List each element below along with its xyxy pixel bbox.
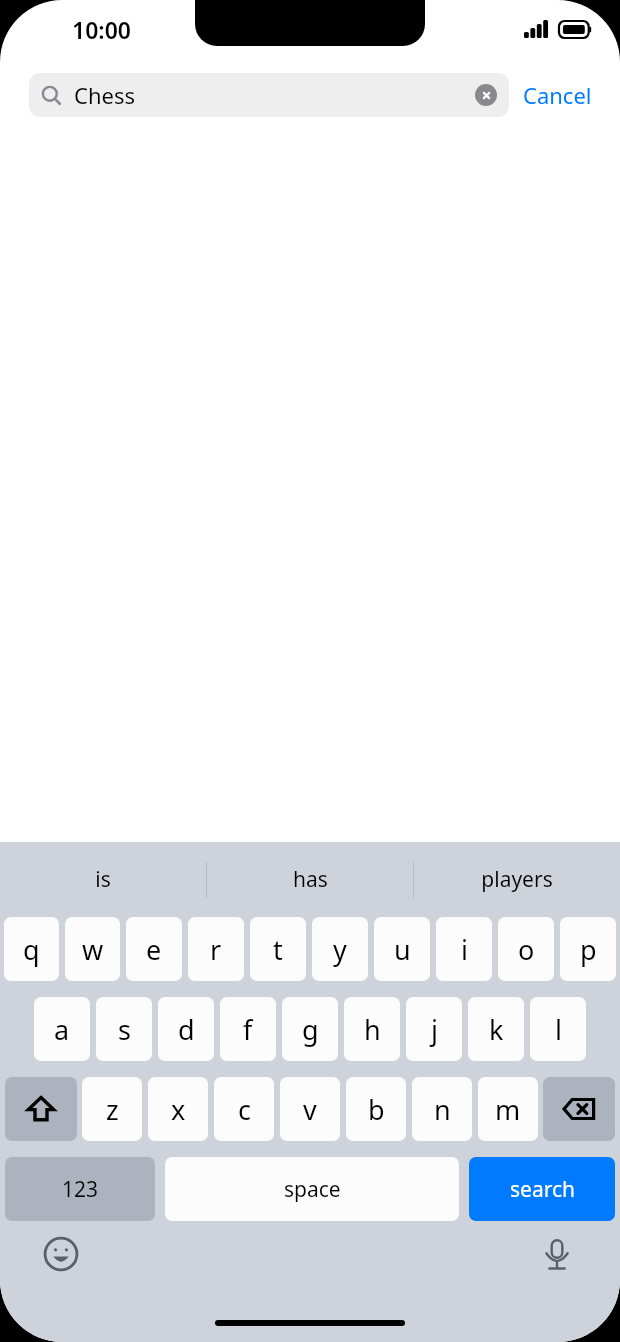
button[interactable]: e	[126, 917, 182, 981]
staticText: p	[580, 931, 597, 968]
staticText: c	[238, 1091, 251, 1128]
staticText: d	[178, 1011, 195, 1048]
button[interactable]: Emoji	[42, 1235, 80, 1273]
staticText: e	[146, 931, 162, 968]
staticText: q	[23, 931, 40, 968]
button[interactable]: q	[4, 917, 59, 981]
staticText: v	[303, 1091, 317, 1128]
button[interactable]: f	[220, 997, 276, 1061]
button[interactable]: Shift	[5, 1077, 77, 1141]
button[interactable]: r	[188, 917, 244, 981]
button[interactable]: t	[250, 917, 306, 981]
button[interactable]: s	[96, 997, 152, 1061]
staticText: z	[106, 1091, 119, 1128]
button[interactable]: j	[406, 997, 462, 1061]
button[interactable]: search	[469, 1157, 615, 1221]
staticText: m	[495, 1091, 521, 1128]
button[interactable]: Dictation	[538, 1235, 576, 1273]
button[interactable]: b	[346, 1077, 406, 1141]
staticText: l	[555, 1011, 562, 1048]
button[interactable]: c	[214, 1077, 274, 1141]
button[interactable]: players	[414, 842, 620, 917]
staticText: w	[82, 931, 104, 968]
button[interactable]: i	[436, 917, 492, 981]
staticText: f	[243, 1011, 253, 1048]
staticText: b	[368, 1091, 385, 1128]
staticText: i	[461, 931, 468, 968]
button[interactable]: p	[560, 917, 616, 981]
button[interactable]: g	[282, 997, 338, 1061]
staticText: n	[434, 1091, 451, 1128]
staticText: g	[302, 1011, 319, 1048]
button[interactable]: u	[374, 917, 430, 981]
button[interactable]: n	[412, 1077, 472, 1141]
staticText: j	[431, 1011, 438, 1048]
staticText: Chess	[74, 80, 475, 110]
staticText: k	[489, 1011, 504, 1048]
button[interactable]: m	[478, 1077, 538, 1141]
staticText: h	[364, 1011, 381, 1048]
staticText: s	[118, 1011, 131, 1048]
button[interactable]: l	[530, 997, 586, 1061]
staticText: u	[394, 931, 411, 968]
button[interactable]: Cancel	[509, 74, 592, 116]
button[interactable]: w	[65, 917, 120, 981]
button[interactable]: has	[207, 842, 413, 917]
button[interactable]: Chess	[29, 73, 509, 117]
staticText: o	[518, 931, 535, 968]
button[interactable]: Clear text	[475, 84, 497, 106]
button[interactable]: d	[158, 997, 214, 1061]
button[interactable]: Delete	[543, 1077, 615, 1141]
button[interactable]: v	[280, 1077, 340, 1141]
button[interactable]: 123	[5, 1157, 155, 1221]
staticText: is	[95, 865, 111, 894]
button[interactable]: a	[34, 997, 90, 1061]
staticText: t	[273, 931, 283, 968]
staticText: players	[481, 865, 553, 894]
staticText: r	[210, 931, 222, 968]
staticText: y	[333, 931, 347, 968]
button[interactable]: h	[344, 997, 400, 1061]
staticText: Cancel	[523, 80, 592, 110]
button[interactable]: is	[0, 842, 206, 917]
button[interactable]: z	[82, 1077, 142, 1141]
staticText: 10:00	[72, 14, 131, 45]
staticText: x	[171, 1091, 186, 1128]
staticText: has	[293, 865, 328, 894]
staticText: space	[284, 1175, 341, 1204]
button[interactable]: space	[165, 1157, 459, 1221]
button[interactable]: o	[498, 917, 554, 981]
staticText: search	[510, 1175, 575, 1204]
staticText: 123	[62, 1175, 99, 1204]
button[interactable]: k	[468, 997, 524, 1061]
staticText: a	[54, 1011, 70, 1048]
button[interactable]: y	[312, 917, 368, 981]
button[interactable]: x	[148, 1077, 208, 1141]
